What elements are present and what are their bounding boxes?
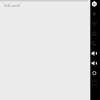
button[interactable]: Power [90, 0, 100, 9]
button[interactable]: Volume up control [90, 48, 100, 58]
button[interactable]: Volume down control [90, 58, 100, 68]
button[interactable]: Volume down [90, 19, 100, 29]
button[interactable]: Rotate right [90, 39, 100, 49]
button[interactable]: Rotate screen [90, 68, 100, 78]
button[interactable]: More options [90, 78, 100, 88]
staticText: Hello world! [4, 4, 21, 8]
button[interactable]: Volume up [90, 9, 100, 19]
button[interactable]: Rotate left [90, 29, 100, 39]
